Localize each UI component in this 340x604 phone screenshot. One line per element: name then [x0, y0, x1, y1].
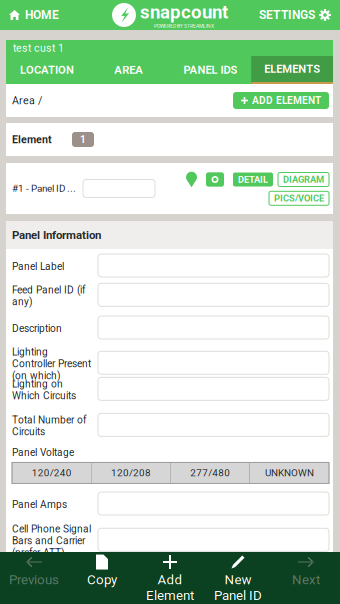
- staticText: PANEL IDS: [183, 63, 237, 76]
- staticText: Element: [12, 133, 52, 146]
- staticText: SETTINGS: [259, 8, 315, 22]
- staticText: LOCATION: [20, 63, 74, 76]
- staticText: DETAIL: [238, 174, 268, 185]
- staticText: Panel Amps: [12, 499, 67, 510]
- staticText: DIAGRAM: [283, 174, 324, 185]
- staticText: Previous: [9, 572, 59, 588]
- staticText: #1 - Panel ID ...: [12, 183, 76, 194]
- staticText: Panel ID: [214, 588, 262, 603]
- staticText: test cust 1: [13, 42, 64, 54]
- button[interactable]: Location: [186, 172, 197, 187]
- button[interactable]: Add: [136, 552, 204, 604]
- staticText: ELEMENTS: [264, 62, 320, 75]
- staticText: PICS/VOICE: [274, 193, 324, 204]
- button[interactable]: Copy: [68, 552, 136, 604]
- staticText: Cell Phone Signal Bars and Carrier (pref…: [12, 523, 91, 559]
- button[interactable]: AREA: [88, 56, 170, 84]
- button[interactable]: 120/240: [12, 462, 91, 483]
- staticText: Area /: [12, 94, 42, 107]
- staticText: Panel Voltage: [12, 447, 74, 458]
- button[interactable]: DIAGRAM: [278, 172, 329, 186]
- staticText: Total Number of Circuits: [12, 414, 87, 438]
- staticText: Panel Information: [12, 228, 101, 242]
- button[interactable]: ELEMENTS: [251, 56, 333, 84]
- staticText: Add: [157, 572, 182, 588]
- staticText: POWERED BY STREAMLINX: [154, 23, 214, 29]
- staticText: Copy: [87, 572, 117, 588]
- staticText: Lighting on Which Circuits: [12, 378, 76, 402]
- staticText: Next: [292, 572, 320, 588]
- staticText: Panel Label: [12, 261, 64, 272]
- button[interactable]: ADD ELEMENT: [233, 92, 329, 109]
- staticText: ADD ELEMENT: [252, 95, 321, 106]
- staticText: New: [224, 572, 251, 588]
- button[interactable]: Next: [272, 552, 340, 604]
- staticText: 1: [80, 134, 86, 145]
- button[interactable]: Previous: [0, 552, 68, 604]
- button[interactable]: SETTINGS: [250, 0, 340, 30]
- staticText: 277/480: [190, 467, 230, 479]
- staticText: 120/240: [32, 467, 72, 479]
- staticText: AREA: [114, 63, 143, 76]
- button[interactable]: LOCATION: [6, 56, 88, 84]
- button[interactable]: 120/208: [91, 462, 170, 483]
- staticText: Lighting Controller Present (on which): [12, 346, 91, 382]
- staticText: Element: [146, 588, 194, 603]
- staticText: 120/208: [111, 467, 151, 479]
- button[interactable]: Photo: [206, 172, 224, 187]
- staticText: Description: [12, 323, 62, 334]
- staticText: snapcount: [140, 1, 228, 23]
- button[interactable]: HOME: [0, 0, 68, 30]
- button[interactable]: New: [204, 552, 272, 604]
- staticText: Feed Panel ID (if any): [12, 284, 86, 308]
- staticText: HOME: [25, 8, 59, 22]
- button[interactable]: PANEL IDS: [169, 56, 251, 84]
- button[interactable]: 1: [72, 132, 94, 147]
- button[interactable]: DETAIL: [233, 172, 273, 186]
- button[interactable]: UNKNOWN: [250, 462, 329, 483]
- staticText: UNKNOWN: [265, 467, 314, 479]
- button[interactable]: 277/480: [170, 462, 250, 483]
- button[interactable]: PICS/VOICE: [269, 191, 329, 205]
